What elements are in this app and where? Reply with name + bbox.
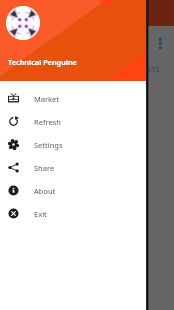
button[interactable]: Exit bbox=[0, 202, 146, 225]
button[interactable]: Refresh bbox=[0, 110, 146, 133]
button[interactable]: About bbox=[0, 179, 146, 202]
staticText: Technical Penguine bbox=[8, 57, 77, 67]
staticText: Share bbox=[34, 163, 55, 173]
staticText: About bbox=[34, 186, 56, 196]
button[interactable]: Share bbox=[0, 156, 146, 179]
staticText: Exit bbox=[34, 209, 47, 219]
staticText: Market bbox=[34, 94, 60, 104]
button[interactable]: Settings bbox=[0, 133, 146, 156]
button[interactable]: More options bbox=[153, 36, 168, 51]
staticText: Settings bbox=[34, 140, 63, 150]
staticText: LATEST POSTS bbox=[109, 64, 160, 74]
staticText: Refresh bbox=[34, 117, 61, 127]
button[interactable]: Market bbox=[0, 87, 146, 110]
